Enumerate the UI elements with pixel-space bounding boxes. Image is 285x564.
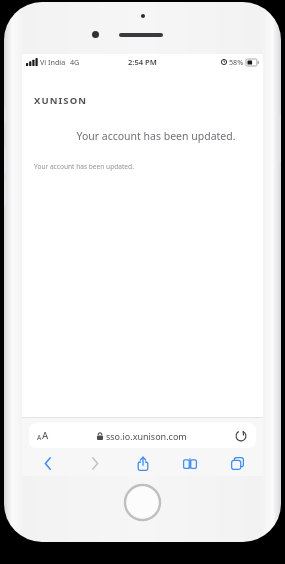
button[interactable]: Back (35, 453, 61, 473)
staticText: XUNISON (34, 94, 88, 107)
staticText: 58% (229, 57, 244, 67)
staticText: A (37, 433, 42, 442)
staticText: 4G (70, 57, 80, 67)
staticText: Your account has been updated. (34, 162, 134, 171)
button[interactable]: Text size options (37, 429, 49, 442)
button[interactable]: Share (130, 453, 156, 473)
staticText: Vi India (40, 57, 66, 67)
staticText: A (42, 429, 49, 442)
staticText: sso.io.xunison.com (106, 430, 187, 442)
staticText: 2:54 PM (128, 57, 157, 67)
button[interactable]: Text size options (29, 423, 256, 448)
staticText: Your account has been updated. (76, 129, 236, 143)
button[interactable]: Forward (82, 453, 108, 473)
button[interactable]: Tabs (224, 453, 250, 473)
button[interactable]: Reload (235, 430, 247, 442)
button[interactable]: Bookmarks (177, 453, 203, 473)
button[interactable]: Home (123, 483, 162, 522)
